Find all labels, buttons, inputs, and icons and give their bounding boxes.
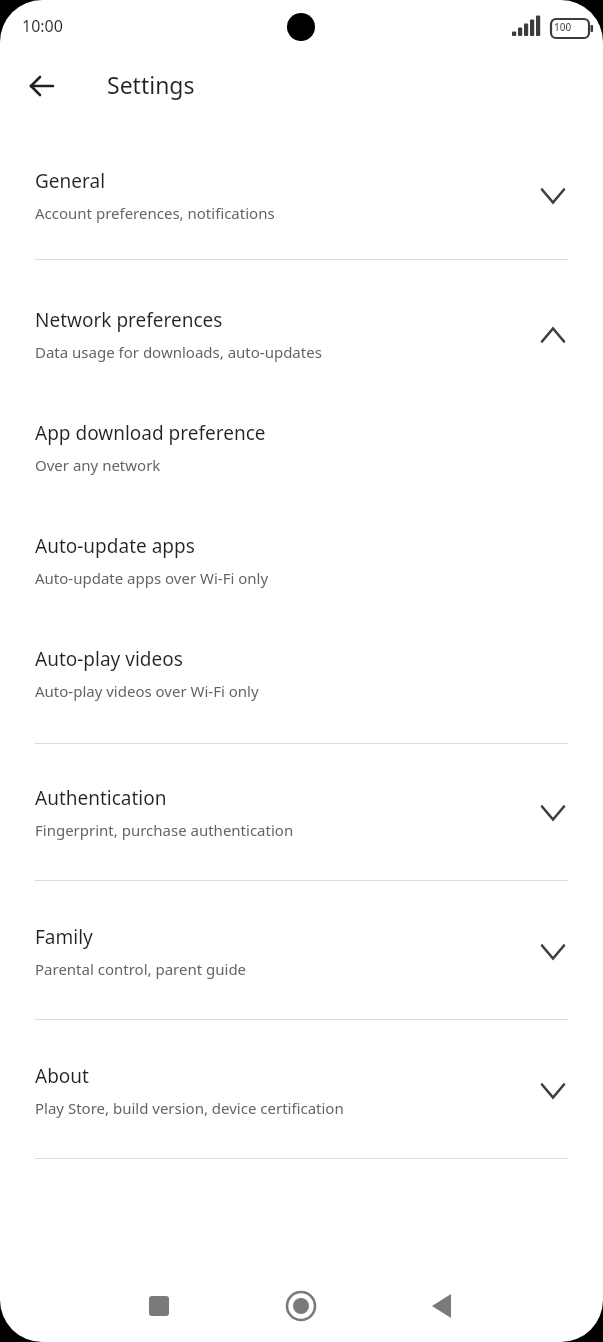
staticText: Parental control, parent guide xyxy=(35,959,247,979)
button[interactable]: App download preference xyxy=(0,398,603,482)
staticText: Account preferences, notifications xyxy=(35,203,275,223)
staticText: Family xyxy=(35,924,93,950)
staticText: Auto-play videos xyxy=(35,646,183,672)
staticText: 100 xyxy=(554,20,572,34)
staticText: About xyxy=(35,1063,89,1089)
staticText: Play Store, build version, device certif… xyxy=(35,1098,344,1118)
button[interactable]: Auto-play videos xyxy=(0,624,603,708)
button[interactable]: Network preferences xyxy=(0,285,603,369)
staticText: Settings xyxy=(107,69,195,100)
staticText: Authentication xyxy=(35,785,167,811)
button[interactable]: Back xyxy=(18,62,66,110)
staticText: General xyxy=(35,168,106,194)
staticText: Auto-update apps over Wi-Fi only xyxy=(35,568,269,588)
button[interactable]: General xyxy=(0,146,603,230)
staticText: Auto-play videos over Wi-Fi only xyxy=(35,681,259,701)
button[interactable]: Auto-update apps xyxy=(0,511,603,595)
button[interactable]: Back xyxy=(418,1282,466,1330)
staticText: 10:00 xyxy=(22,15,63,37)
staticText: Auto-update apps xyxy=(35,533,195,559)
button[interactable]: Home xyxy=(277,1282,325,1330)
button[interactable]: Family xyxy=(0,902,603,986)
staticText: App download preference xyxy=(35,420,266,446)
button[interactable]: Recent apps xyxy=(135,1282,183,1330)
staticText: Fingerprint, purchase authentication xyxy=(35,820,294,840)
staticText: Over any network xyxy=(35,455,161,475)
staticText: Data usage for downloads, auto-updates xyxy=(35,342,322,362)
button[interactable]: About xyxy=(0,1041,603,1125)
button[interactable]: Authentication xyxy=(0,763,603,847)
staticText: Network preferences xyxy=(35,307,223,333)
